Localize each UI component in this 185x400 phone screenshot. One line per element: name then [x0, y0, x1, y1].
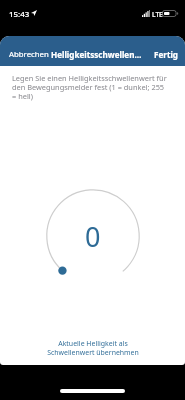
- button[interactable]: Fertig: [151, 46, 185, 63]
- staticText: Abbrechen: [9, 49, 49, 60]
- staticText: Legen Sie einen Helligkeitsschwellenwert…: [12, 73, 179, 101]
- staticText: 0: [85, 218, 101, 255]
- staticText: LTE: [152, 10, 163, 19]
- button[interactable]: Aktuelle Helligkeit als Schwellenwert üb…: [0, 337, 185, 359]
- staticText: 15:43: [9, 9, 30, 20]
- button[interactable]: Abbrechen: [0, 46, 52, 63]
- staticText: Helligkeitsschwellenwert: [51, 49, 148, 60]
- staticText: Aktuelle Helligkeit als Schwellenwert üb…: [47, 339, 139, 357]
- staticText: Fertig: [154, 49, 178, 60]
